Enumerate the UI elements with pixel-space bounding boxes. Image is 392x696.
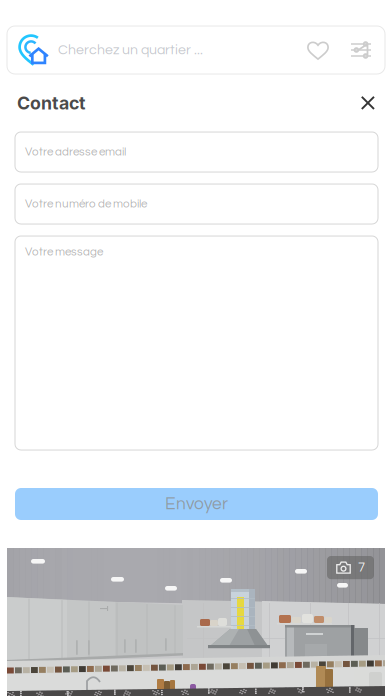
staticText: Votre numéro de mobile (25, 198, 147, 210)
staticText: Votre adresse email (25, 146, 126, 158)
staticText: Contact (17, 92, 85, 114)
staticText: Votre message (25, 246, 103, 258)
button[interactable]: Fermer (361, 96, 375, 110)
button[interactable]: 7 photos (327, 556, 374, 579)
staticText: Cherchez un quartier ... (58, 43, 203, 57)
staticText: 7 (358, 561, 365, 574)
button[interactable]: Envoyer (15, 488, 378, 520)
button[interactable]: Cherchez un quartier ... (7, 26, 385, 74)
staticText: Envoyer (165, 495, 228, 513)
